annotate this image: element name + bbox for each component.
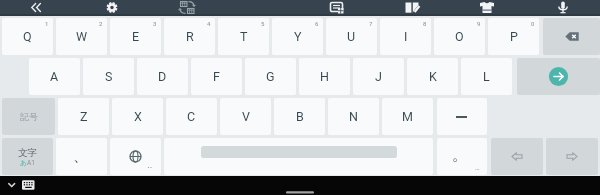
staticText: G (266, 69, 275, 84)
staticText: H (320, 69, 329, 84)
button[interactable] (100, 0, 124, 16)
staticText: W (76, 29, 88, 44)
staticText: 記号 (20, 111, 38, 122)
button[interactable] (22, 176, 42, 195)
staticText: 0 (531, 20, 535, 27)
button[interactable] (543, 18, 600, 55)
button[interactable]: I (380, 18, 431, 55)
staticText: Q (23, 29, 32, 44)
button[interactable]: X (112, 98, 163, 135)
button[interactable] (475, 0, 499, 16)
button[interactable]: F (191, 58, 242, 95)
button[interactable] (2, 176, 22, 195)
button[interactable]: Y (272, 18, 323, 55)
staticText: 8 (423, 20, 427, 27)
button[interactable]: K (407, 58, 458, 95)
button[interactable]: 。 (437, 138, 487, 175)
staticText: 4 (207, 20, 211, 27)
staticText: 6 (315, 20, 319, 27)
button[interactable]: B (274, 98, 325, 135)
staticText: I (404, 29, 408, 44)
staticText: F (213, 69, 220, 84)
staticText: C (187, 109, 196, 124)
staticText: V (242, 109, 250, 124)
staticText: 1 (45, 20, 49, 27)
staticText: … (475, 164, 480, 172)
staticText: 3 (153, 20, 157, 27)
button[interactable] (175, 0, 199, 16)
button[interactable] (551, 0, 575, 16)
button[interactable]: Q (2, 18, 53, 55)
staticText: Y (294, 29, 302, 44)
button[interactable]: G (245, 58, 296, 95)
staticText: X (134, 109, 142, 124)
button[interactable]: U (326, 18, 377, 55)
button[interactable] (325, 0, 349, 16)
staticText: 7 (369, 20, 373, 27)
button[interactable]: R (164, 18, 215, 55)
button[interactable]: P (488, 18, 539, 55)
button[interactable]: 文字 (2, 138, 53, 175)
button[interactable] (110, 138, 161, 175)
staticText: E (132, 29, 140, 44)
staticText: P (510, 29, 518, 44)
button[interactable] (437, 98, 487, 135)
button[interactable] (25, 0, 49, 16)
staticText: D (158, 69, 167, 84)
staticText: O (455, 29, 464, 44)
staticText: T (240, 29, 248, 44)
button[interactable]: T (218, 18, 269, 55)
button[interactable]: N (328, 98, 379, 135)
button[interactable]: S (83, 58, 134, 95)
button[interactable]: J (353, 58, 404, 95)
button[interactable]: E (110, 18, 161, 55)
button[interactable]: W (56, 18, 107, 55)
button[interactable] (491, 138, 543, 175)
button[interactable]: D (137, 58, 188, 95)
button[interactable]: L (461, 58, 512, 95)
button[interactable]: M (382, 98, 433, 135)
button[interactable]: V (220, 98, 271, 135)
staticText: 、 (73, 147, 88, 166)
staticText: 5 (261, 20, 265, 27)
staticText: K (429, 69, 437, 84)
button[interactable]: H (299, 58, 350, 95)
button[interactable] (517, 58, 600, 95)
staticText: 文字 (18, 147, 37, 159)
staticText: Z (80, 109, 88, 124)
staticText: B (296, 109, 304, 124)
button[interactable]: 記号 (2, 98, 55, 135)
button[interactable]: C (166, 98, 217, 135)
staticText: U (347, 29, 356, 44)
button[interactable]: A (29, 58, 80, 95)
button[interactable] (164, 138, 433, 175)
staticText: R (186, 29, 194, 44)
staticText: あ (20, 159, 27, 167)
button[interactable] (546, 138, 598, 175)
staticText: A1 (27, 159, 35, 167)
staticText: N (349, 109, 358, 124)
staticText: L (483, 69, 490, 84)
button[interactable]: O (434, 18, 485, 55)
button[interactable]: 、 (56, 138, 107, 175)
button[interactable]: Z (58, 98, 109, 135)
button[interactable] (400, 0, 424, 16)
staticText: A (50, 69, 59, 84)
staticText: 9 (477, 20, 481, 27)
staticText: S (105, 69, 113, 84)
staticText: 。 (452, 146, 467, 165)
staticText: 2 (99, 20, 103, 27)
staticText: J (375, 69, 382, 84)
staticText: M (402, 109, 413, 124)
